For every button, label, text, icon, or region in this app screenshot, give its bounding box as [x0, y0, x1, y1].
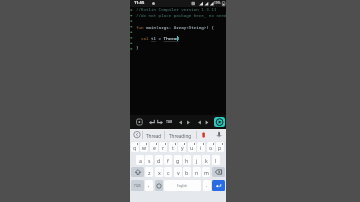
button[interactable]: , — [145, 180, 153, 191]
staticText: val t1 = Thread — [141, 36, 179, 42]
button[interactable]: i — [197, 142, 205, 152]
staticText: Thread — [146, 133, 162, 139]
button[interactable]: b — [183, 167, 191, 177]
staticText: e — [153, 144, 156, 151]
button[interactable]: x — [155, 167, 163, 177]
button[interactable] — [214, 117, 225, 127]
button[interactable]: p — [216, 142, 224, 152]
staticText: } — [136, 45, 139, 51]
button[interactable]: l — [212, 155, 220, 165]
staticText: t — [172, 144, 174, 151]
button[interactable]: q — [131, 142, 139, 152]
button[interactable]: . — [203, 180, 211, 191]
button[interactable] — [131, 167, 144, 177]
button[interactable]: m — [202, 167, 210, 177]
staticText: k — [205, 157, 208, 164]
button[interactable] — [212, 180, 225, 191]
staticText: u — [190, 144, 194, 151]
button[interactable]: a — [136, 155, 144, 165]
staticText: m — [204, 169, 209, 176]
button[interactable]: Thread — [143, 130, 164, 141]
staticText: x — [158, 169, 161, 176]
button[interactable] — [133, 131, 141, 139]
staticText: English — [177, 184, 188, 188]
button[interactable]: d — [155, 155, 163, 165]
staticText: j — [196, 157, 198, 164]
staticText: o — [209, 144, 213, 151]
button[interactable]: k — [202, 155, 210, 165]
button[interactable] — [148, 119, 156, 125]
button[interactable] — [155, 180, 163, 191]
staticText: b — [185, 169, 189, 176]
staticText: n — [195, 169, 199, 176]
button[interactable]: c — [164, 167, 172, 177]
button[interactable]: j — [193, 155, 201, 165]
button[interactable]: r — [159, 142, 167, 152]
staticText: //do not place package here, no need — [136, 13, 227, 19]
staticText: z — [148, 169, 151, 176]
staticText: l — [215, 157, 217, 164]
button[interactable]: n — [193, 167, 201, 177]
staticText: y — [181, 144, 184, 151]
button[interactable]: w — [140, 142, 148, 152]
staticText: q — [133, 144, 137, 151]
staticText: 11:55 — [134, 0, 145, 5]
button[interactable] — [212, 167, 225, 177]
staticText: g — [176, 157, 180, 164]
staticText: c — [167, 169, 170, 176]
staticText: h — [185, 157, 189, 164]
staticText: f — [167, 157, 169, 164]
button[interactable]: y — [178, 142, 186, 152]
staticText: d — [157, 157, 161, 164]
staticText: Threading — [169, 133, 192, 139]
staticText: p — [218, 144, 222, 151]
staticText: ?123 — [134, 184, 141, 188]
staticText: s — [148, 157, 151, 164]
staticText: w — [142, 144, 147, 151]
button[interactable]: o — [207, 142, 215, 152]
button[interactable]: TAB — [166, 119, 173, 124]
button[interactable]: ?123 — [131, 180, 144, 191]
button[interactable] — [216, 131, 222, 140]
button[interactable]: English — [164, 180, 201, 191]
button[interactable] — [136, 118, 143, 126]
staticText: fun main(args: Array<String>) { — [136, 25, 214, 31]
button[interactable] — [156, 119, 164, 125]
button[interactable] — [201, 131, 206, 140]
staticText: . — [206, 182, 208, 189]
button[interactable]: z — [145, 167, 153, 177]
staticText: v — [177, 169, 180, 176]
button[interactable]: f — [164, 155, 172, 165]
button[interactable]: v — [174, 167, 182, 177]
staticText: , — [148, 182, 150, 189]
staticText: TAB — [166, 119, 173, 124]
staticText: r — [162, 144, 165, 151]
button[interactable]: e — [150, 142, 158, 152]
staticText: i — [200, 144, 202, 151]
button[interactable]: Threading — [165, 130, 196, 141]
staticText: //Kotlin Compiler version 1.3.11 — [136, 7, 217, 13]
button[interactable]: t — [169, 142, 177, 152]
button[interactable]: g — [174, 155, 182, 165]
button[interactable]: u — [188, 142, 196, 152]
staticText: 19% — [214, 1, 221, 5]
button[interactable]: s — [145, 155, 153, 165]
button[interactable]: h — [183, 155, 191, 165]
staticText: a — [139, 157, 142, 164]
